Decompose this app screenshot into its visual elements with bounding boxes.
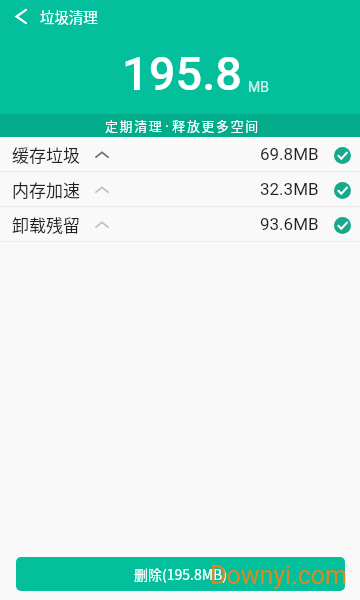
button[interactable]: 卸载残留: [0, 207, 360, 241]
staticText: 删除(195.8MB): [134, 564, 228, 584]
staticText: 垃圾清理: [40, 6, 98, 27]
staticText: MB: [248, 79, 269, 95]
staticText: 69.8MB: [260, 144, 319, 164]
staticText: 93.6MB: [260, 214, 319, 234]
staticText: 定期清理·释放更多空间: [105, 116, 260, 135]
button[interactable]: 删除(195.8MB): [16, 557, 345, 591]
staticText: 内存加速: [12, 177, 80, 202]
button[interactable]: 缓存垃圾: [0, 137, 360, 171]
staticText: 卸载残留: [12, 212, 80, 237]
staticText: 缓存垃圾: [12, 142, 80, 167]
button[interactable]: 返回: [0, 0, 42, 33]
staticText: Downyi.com: [210, 561, 348, 590]
staticText: 32.3MB: [260, 179, 319, 199]
staticText: 195.8: [122, 46, 242, 101]
button[interactable]: 内存加速: [0, 172, 360, 206]
